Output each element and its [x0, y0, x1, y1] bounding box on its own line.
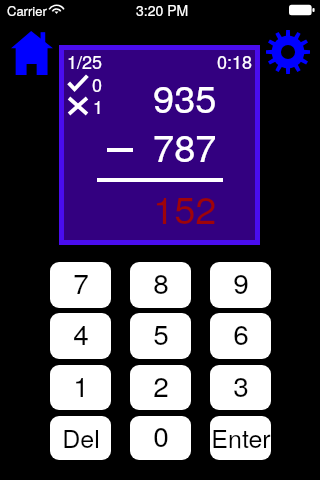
button[interactable]: Del: [50, 416, 111, 460]
staticText: 2: [153, 365, 169, 405]
staticText: 4: [73, 313, 89, 353]
staticText: 152: [153, 180, 217, 234]
staticText: 1: [73, 365, 89, 405]
staticText: 0: [153, 416, 169, 455]
staticText: 9: [233, 262, 249, 302]
staticText: 8: [153, 262, 169, 302]
staticText: 935: [153, 69, 217, 123]
button[interactable]: 1: [50, 365, 111, 410]
button[interactable]: 2: [130, 365, 191, 410]
button[interactable]: 9: [210, 262, 271, 308]
button[interactable]: 7: [50, 262, 111, 308]
button[interactable]: 3: [210, 365, 271, 410]
button[interactable]: 6: [210, 313, 271, 359]
button[interactable]: Settings: [266, 30, 310, 74]
staticText: 3:20 PM: [136, 0, 189, 20]
button[interactable]: 4: [50, 313, 111, 359]
staticText: 1/25: [67, 48, 103, 74]
staticText: Del: [62, 419, 100, 455]
button[interactable]: 0: [130, 416, 191, 460]
staticText: 0:18: [217, 48, 253, 74]
staticText: 1: [93, 93, 104, 119]
staticText: Enter: [211, 419, 271, 455]
staticText: 3: [233, 365, 249, 405]
staticText: 5: [153, 313, 169, 353]
staticText: 0: [92, 71, 103, 97]
staticText: Carrier: [7, 1, 47, 20]
staticText: 6: [233, 313, 249, 353]
button[interactable]: Enter: [210, 416, 271, 460]
button[interactable]: 8: [130, 262, 191, 308]
button[interactable]: Home: [11, 31, 53, 75]
staticText: 7: [73, 262, 89, 302]
button[interactable]: 5: [130, 313, 191, 359]
staticText: 787: [153, 118, 217, 172]
